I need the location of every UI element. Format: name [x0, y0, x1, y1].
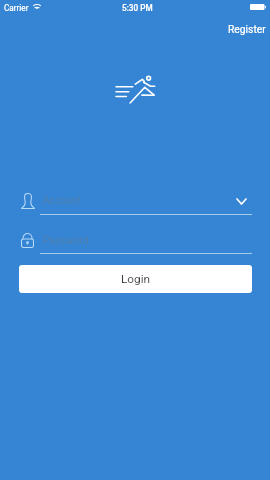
button[interactable]: Register — [220, 18, 270, 40]
staticText: 5:30 PM — [122, 3, 153, 13]
staticText: Carrier — [4, 3, 29, 13]
staticText: Register — [228, 23, 266, 35]
staticText: Login — [121, 272, 151, 286]
button[interactable]: Login — [19, 265, 252, 293]
staticText: Password — [43, 234, 89, 246]
staticText: Account — [43, 194, 82, 206]
button[interactable]: Account — [40, 188, 234, 212]
button[interactable]: Show saved accounts — [230, 189, 252, 213]
button[interactable]: Password — [40, 228, 252, 252]
